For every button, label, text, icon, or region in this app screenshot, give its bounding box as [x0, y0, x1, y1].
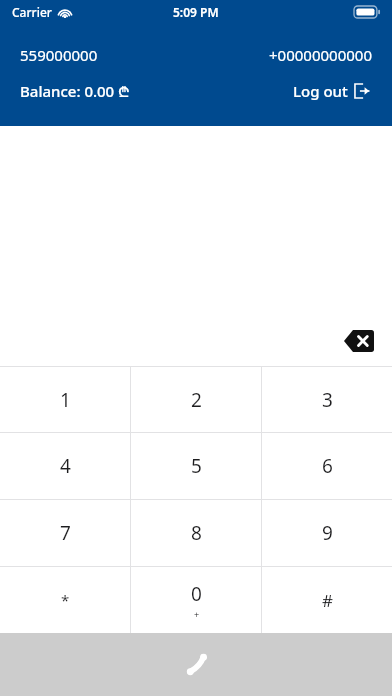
button[interactable]: #: [262, 567, 392, 633]
staticText: 7: [60, 520, 71, 546]
button[interactable]: 6: [262, 433, 392, 499]
staticText: 2: [191, 387, 202, 413]
button[interactable]: 3: [262, 367, 392, 432]
staticText: Log out: [293, 81, 348, 101]
staticText: +00000000000: [269, 45, 372, 65]
staticText: 8: [191, 520, 202, 546]
staticText: 5:09 PM: [173, 4, 219, 20]
staticText: +: [194, 608, 200, 620]
staticText: Carrier: [12, 4, 52, 20]
staticText: 6: [322, 453, 333, 479]
button[interactable]: 1: [0, 367, 130, 432]
staticText: 3: [322, 387, 333, 413]
staticText: *: [61, 590, 70, 610]
staticText: 0: [191, 581, 202, 607]
button[interactable]: 8: [131, 500, 261, 566]
button[interactable]: Backspace: [342, 328, 376, 354]
button[interactable]: Log out: [291, 79, 372, 103]
button[interactable]: 4: [0, 433, 130, 499]
button[interactable]: 5: [131, 433, 261, 499]
button[interactable]: 0: [131, 567, 261, 633]
button[interactable]: 9: [262, 500, 392, 566]
staticText: #: [322, 589, 333, 612]
button[interactable]: Call: [0, 633, 392, 696]
button[interactable]: 7: [0, 500, 130, 566]
button[interactable]: *: [0, 567, 130, 633]
staticText: 4: [60, 453, 71, 479]
staticText: 5: [191, 453, 202, 479]
staticText: 559000000: [20, 45, 98, 65]
staticText: 9: [322, 520, 333, 546]
staticText: Balance: 0.00 ₾: [20, 81, 130, 101]
staticText: 1: [60, 387, 71, 413]
button[interactable]: 2: [131, 367, 261, 432]
